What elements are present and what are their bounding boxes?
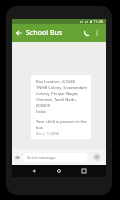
staticText: Your child is present in the bus: [36, 119, 87, 131]
button[interactable]: Home: [53, 165, 65, 177]
staticText: 11:46: [93, 19, 104, 24]
button[interactable]: Back: [12, 24, 26, 42]
button[interactable]: More options: [92, 24, 102, 42]
button[interactable]: Send: [88, 149, 106, 165]
button[interactable]: Recent apps: [78, 165, 90, 177]
button[interactable]: Call: [81, 24, 92, 42]
button[interactable]: Back: [28, 165, 40, 177]
button[interactable]: Send message: [23, 153, 88, 162]
staticText: Send message: [27, 155, 56, 161]
staticText: School Bus: [26, 28, 63, 38]
button[interactable]: Add attachment: [12, 149, 23, 165]
staticText: Bus location: 2/2648 TNHB Colony, Sivana…: [36, 79, 88, 115]
staticText: Nov 2, 11:46PM: [36, 132, 60, 136]
